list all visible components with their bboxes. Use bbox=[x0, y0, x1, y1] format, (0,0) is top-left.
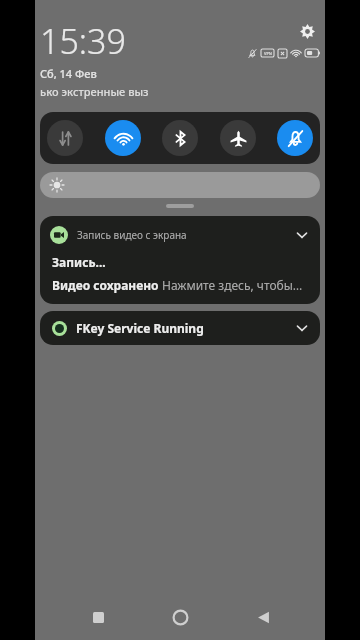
button[interactable]: Mobile data bbox=[47, 120, 83, 156]
button[interactable]: Recents bbox=[78, 597, 118, 637]
staticText: Запись... bbox=[52, 254, 106, 270]
button[interactable]: Home bbox=[160, 597, 200, 637]
button[interactable]: Expand notification bbox=[292, 225, 312, 245]
staticText: Нажмите здесь, чтобы… bbox=[162, 277, 303, 293]
staticText: Запись видео с экрана bbox=[77, 228, 292, 242]
button[interactable]: Expand bbox=[166, 204, 194, 208]
button[interactable]: Wi-Fi bbox=[105, 120, 141, 156]
button[interactable]: Expand notification bbox=[292, 318, 312, 338]
staticText: FKey Service Running bbox=[76, 320, 292, 336]
button[interactable]: Запись видео с экрана bbox=[40, 216, 320, 304]
button[interactable]: FKey Service Running bbox=[40, 311, 320, 345]
staticText: VPN bbox=[264, 51, 272, 56]
button[interactable]: Airplane mode bbox=[220, 120, 256, 156]
button[interactable]: Settings bbox=[294, 18, 320, 44]
staticText: Сб, 14 Фев bbox=[40, 66, 97, 81]
button[interactable]: Bluetooth bbox=[162, 120, 198, 156]
button[interactable]: Silent mode bbox=[277, 120, 313, 156]
staticText: ько экстренные выз bbox=[40, 84, 149, 99]
button[interactable]: Back bbox=[243, 597, 283, 637]
staticText: 15:39 bbox=[40, 18, 126, 64]
button[interactable]: Brightness bbox=[40, 172, 320, 198]
staticText: Видео сохранено bbox=[52, 277, 162, 293]
